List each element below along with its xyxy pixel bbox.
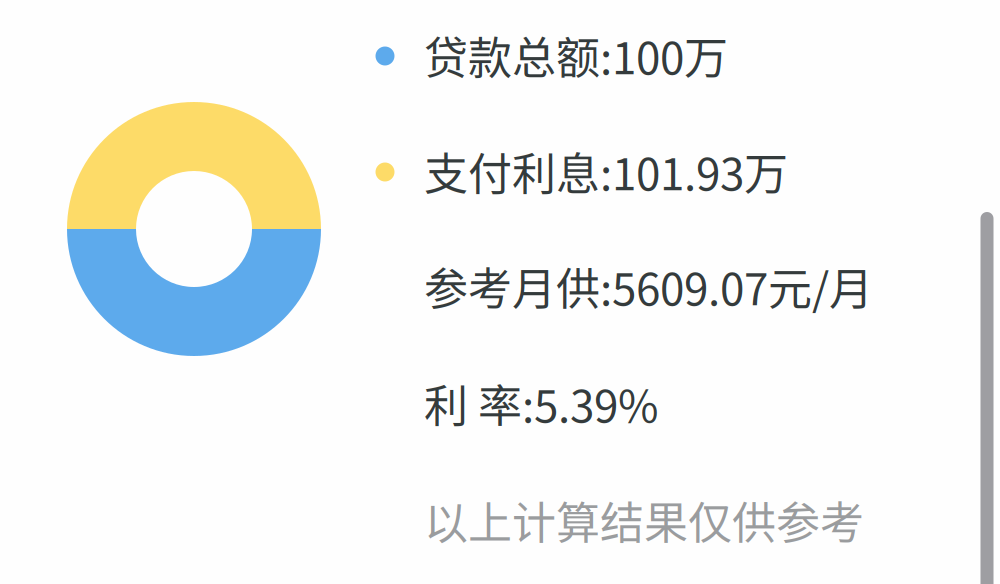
staticText: 贷款总额:100万 [424,23,728,87]
staticText: 支付利息:101.93万 [424,139,788,203]
staticText: 以上计算结果仅供参考 [424,488,864,552]
staticText: 利 率:5.39% [424,371,659,435]
staticText: 参考月供:5609.07元/月 [424,254,873,318]
